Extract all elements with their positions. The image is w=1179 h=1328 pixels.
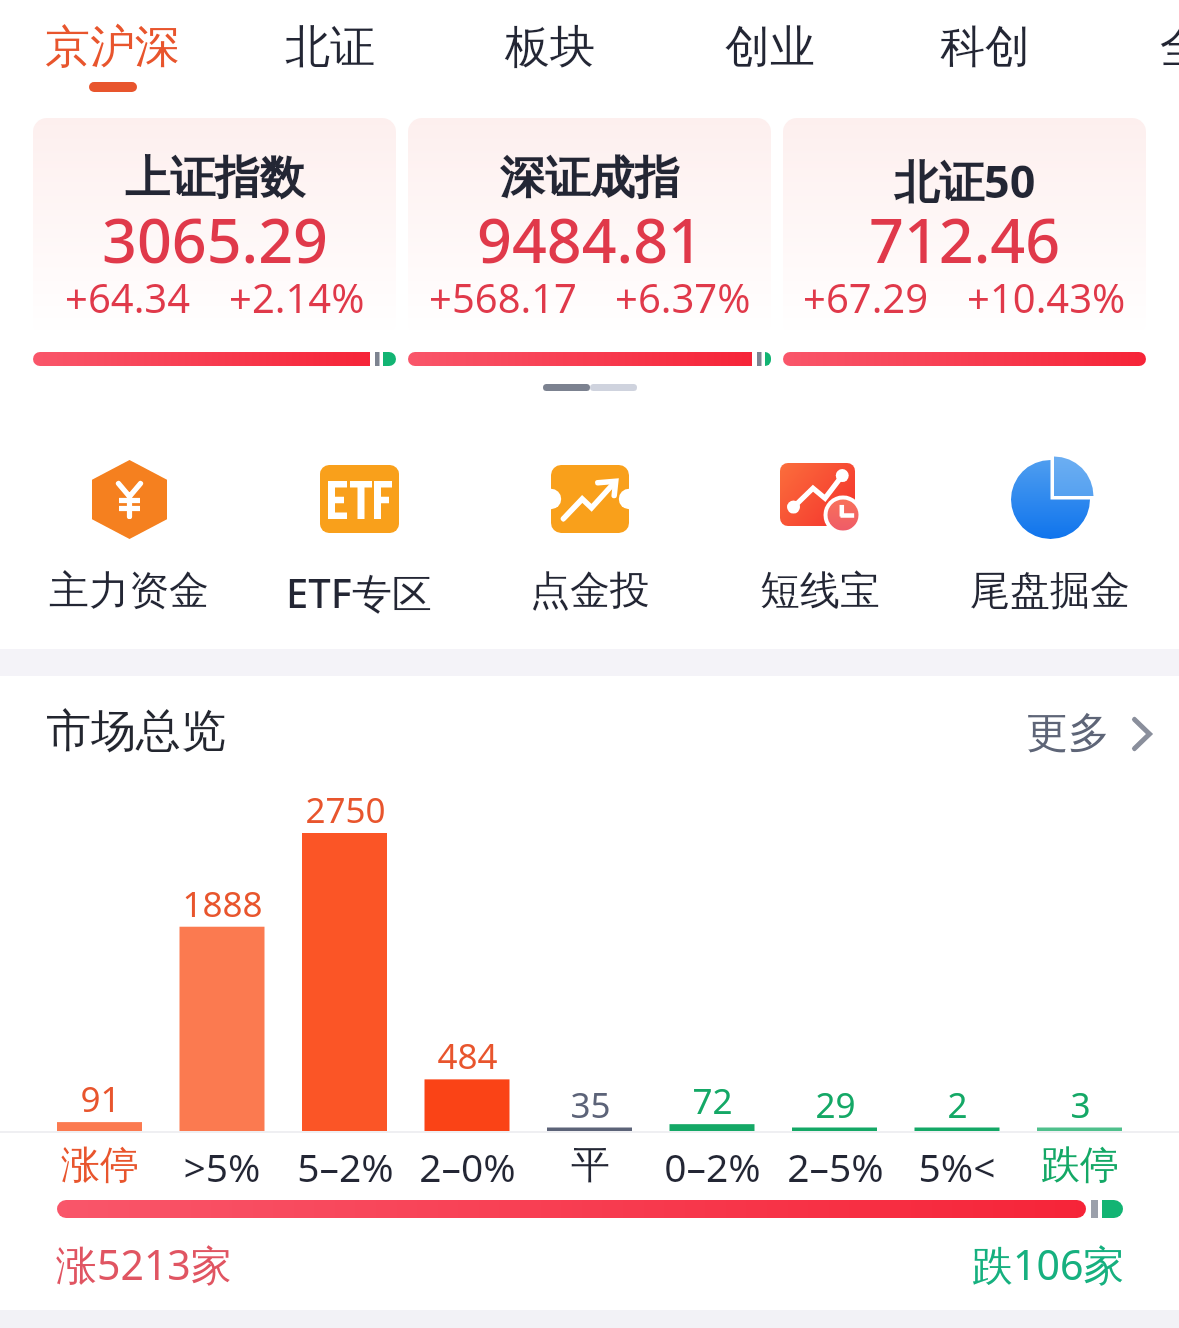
staticText: 2–5%	[787, 1140, 884, 1193]
staticText: 3065.29	[102, 198, 328, 281]
staticText: 1888	[182, 880, 263, 928]
staticText: 市场总览	[46, 703, 226, 760]
staticText: +67.29	[803, 270, 929, 324]
staticText: 3	[1070, 1081, 1091, 1129]
staticText: 35	[570, 1081, 611, 1129]
staticText: 涨停	[61, 1140, 139, 1189]
button[interactable]: 全	[1160, 19, 1179, 76]
staticText: 北证	[285, 19, 375, 76]
staticText: 2	[947, 1081, 968, 1129]
staticText: 跌停	[1041, 1140, 1119, 1189]
staticText: 主力资金	[49, 565, 209, 615]
staticText: 板块	[505, 19, 595, 76]
button[interactable]: 板块	[505, 19, 595, 76]
staticText: 712.46	[869, 198, 1061, 281]
staticText: 北证50	[894, 150, 1036, 211]
staticText: 上证指数	[125, 150, 305, 207]
staticText: 科创	[940, 19, 1030, 76]
button[interactable]: 主力资金	[14, 455, 244, 620]
button[interactable]: 创业	[725, 19, 815, 76]
staticText: 29	[815, 1081, 856, 1129]
staticText: +64.34	[65, 270, 191, 324]
staticText: 2750	[305, 786, 386, 834]
staticText: 2–0%	[419, 1140, 516, 1193]
button[interactable]: 点金投	[475, 455, 705, 620]
staticText: 484	[437, 1032, 498, 1080]
staticText: ETF专区	[286, 565, 432, 620]
staticText: 尾盘掘金	[970, 565, 1130, 615]
staticText: +6.37%	[615, 270, 751, 324]
staticText: 涨5213家	[56, 1236, 232, 1292]
button[interactable]: ETF专区	[244, 455, 474, 620]
staticText: 0–2%	[664, 1140, 761, 1193]
staticText: >5%	[183, 1140, 261, 1193]
staticText: 跌106家	[972, 1236, 1125, 1292]
staticText: 5–2%	[297, 1140, 394, 1193]
staticText: +568.17	[429, 270, 577, 324]
button[interactable]: 北证50	[783, 118, 1146, 368]
staticText: 深证成指	[500, 150, 680, 207]
button[interactable]: 北证	[285, 19, 375, 76]
button[interactable]: 上证指数	[33, 118, 396, 368]
staticText: +10.43%	[967, 270, 1126, 324]
button[interactable]: 短线宝	[705, 455, 935, 620]
staticText: 5%<	[918, 1140, 996, 1193]
staticText: 平	[571, 1140, 610, 1189]
button[interactable]: 尾盘掘金	[935, 455, 1165, 620]
button[interactable]: 京沪深	[45, 19, 180, 92]
staticText: 创业	[725, 19, 815, 76]
staticText: 京沪深	[45, 19, 180, 76]
staticText: 全	[1160, 19, 1179, 76]
staticText: 短线宝	[760, 565, 880, 615]
button[interactable]: 科创	[940, 19, 1030, 76]
staticText: 72	[692, 1077, 733, 1125]
staticText: 9484.81	[477, 198, 703, 281]
button[interactable]: 更多	[1026, 707, 1152, 760]
staticText: +2.14%	[229, 270, 365, 324]
button[interactable]: 深证成指	[408, 118, 771, 368]
staticText: 91	[80, 1075, 121, 1123]
staticText: 点金投	[530, 565, 650, 615]
staticText: 更多	[1026, 707, 1110, 760]
